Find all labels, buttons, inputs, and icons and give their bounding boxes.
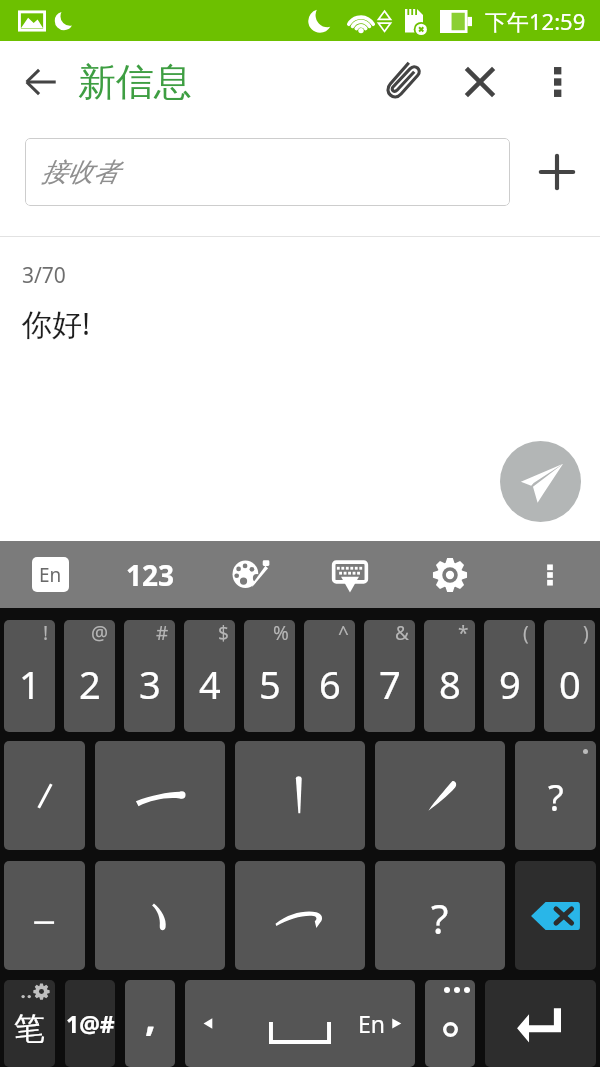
staticText: 2 <box>79 658 101 710</box>
button[interactable]: Period <box>425 980 475 1067</box>
button[interactable]: Theme <box>200 541 300 608</box>
staticText: 5 <box>259 658 281 710</box>
button[interactable]: ! <box>4 620 55 732</box>
staticText: 1 <box>19 658 41 710</box>
staticText: 1@# <box>66 1008 115 1039</box>
staticText: 接收者 <box>41 156 119 189</box>
staticText: % <box>273 620 289 646</box>
staticText: 6 <box>319 658 341 710</box>
staticText: @ <box>91 620 109 646</box>
staticText: 8 <box>439 658 461 710</box>
button[interactable]: @ <box>64 620 115 732</box>
button[interactable]: Send <box>500 441 581 522</box>
staticText: 3/70 <box>22 261 66 290</box>
button[interactable]: Add recipient <box>527 142 587 202</box>
button[interactable]: & <box>364 620 415 732</box>
button[interactable]: Shu stroke <box>235 741 365 850</box>
button[interactable]: % <box>244 620 295 732</box>
staticText: & <box>395 620 409 646</box>
button[interactable]: ) <box>544 620 595 732</box>
button[interactable]: , <box>125 980 175 1067</box>
staticText: * <box>458 620 469 646</box>
staticText: 7 <box>379 658 401 710</box>
button[interactable]: 1@# <box>65 980 115 1067</box>
staticText: 123 <box>126 556 175 594</box>
button[interactable]: Dian stroke <box>95 861 225 970</box>
staticText: 0 <box>559 658 581 710</box>
button[interactable]: 接收者 <box>25 138 510 206</box>
staticText: En <box>39 562 62 588</box>
button[interactable]: Wildcard <box>375 861 505 970</box>
button[interactable]: En <box>0 541 100 608</box>
staticText: , <box>145 990 156 1042</box>
button[interactable]: ( <box>484 620 535 732</box>
staticText: ) <box>583 620 589 646</box>
button[interactable]: Space <box>185 980 415 1067</box>
button[interactable]: Attach <box>368 50 432 114</box>
staticText: ( <box>523 620 529 646</box>
staticText: ^ <box>338 620 349 646</box>
button[interactable]: # <box>124 620 175 732</box>
staticText: ? <box>431 891 449 945</box>
button[interactable]: More <box>500 541 600 608</box>
button[interactable]: More options <box>530 54 586 110</box>
button[interactable]: Close <box>448 50 512 114</box>
button[interactable]: 123 <box>100 541 200 608</box>
button[interactable]: Hide keyboard <box>300 541 400 608</box>
staticText: En <box>358 1008 386 1039</box>
button[interactable]: Underscore <box>4 861 85 970</box>
staticText: 下午12:59 <box>485 6 586 36</box>
button[interactable]: Wildcard <box>515 741 596 850</box>
button[interactable]: Settings <box>400 541 500 608</box>
staticText: ? <box>548 773 564 822</box>
staticText: 9 <box>499 658 521 710</box>
button[interactable]: Handwriting input <box>4 980 55 1067</box>
button[interactable]: * <box>424 620 475 732</box>
button[interactable]: Enter <box>485 980 596 1067</box>
staticText: # <box>156 620 169 646</box>
staticText: 4 <box>199 658 221 710</box>
button[interactable]: $ <box>184 620 235 732</box>
staticText: 新信息 <box>78 58 192 106</box>
button[interactable]: Zhe stroke <box>235 861 365 970</box>
button[interactable]: Pie stroke <box>375 741 505 850</box>
button[interactable]: Back <box>12 53 70 111</box>
staticText: ! <box>43 620 49 646</box>
button[interactable]: Backspace <box>515 861 596 970</box>
button[interactable]: Slash <box>4 741 85 850</box>
staticText: 3 <box>139 658 161 710</box>
staticText: $ <box>218 620 229 646</box>
button[interactable]: Heng stroke <box>95 741 225 850</box>
staticText: 你好! <box>22 303 91 344</box>
button[interactable]: ^ <box>304 620 355 732</box>
staticText: 笔 <box>14 1009 45 1048</box>
